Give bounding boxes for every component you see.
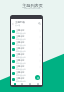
button[interactable]: Tab 2 [18, 82, 26, 85]
staticText: 主题名称 [16, 29, 25, 32]
staticText: 简要描述信息 [16, 80, 26, 82]
staticText: 主题名称 [16, 59, 25, 62]
staticText: 主题列表 [15, 21, 25, 24]
staticText: THEME LIST PAGE [24, 7, 41, 10]
staticText: 简要描述信息 [16, 62, 26, 64]
button[interactable]: 主题名称 [11, 34, 42, 40]
button[interactable]: Search [38, 22, 41, 25]
button[interactable]: 主题名称 [11, 40, 42, 46]
staticText: 主题名称 [16, 47, 25, 50]
button[interactable]: Add [35, 75, 40, 80]
staticText: 简要描述信息 [16, 44, 26, 46]
button[interactable]: Tab 4 [34, 82, 42, 85]
staticText: 主题名称 [16, 41, 25, 44]
button[interactable]: 主题名称 [11, 70, 42, 76]
button[interactable]: 主题名称 [11, 46, 42, 52]
staticText: 主题名称 [16, 77, 25, 80]
staticText: 简要描述信息 [16, 68, 26, 70]
button[interactable]: 主题名称 [11, 28, 42, 34]
button[interactable]: Back [11, 19, 42, 28]
button[interactable]: 主题名称 [11, 64, 42, 70]
staticText: 简要描述信息 [16, 56, 26, 58]
staticText: 主题名称 [16, 65, 25, 68]
staticText: 主题列表页 [22, 3, 43, 8]
staticText: 主题名称 [16, 35, 25, 38]
staticText: 主题名称 [16, 53, 25, 56]
staticText: 简要描述信息 [16, 50, 26, 52]
button[interactable]: 主题名称 [11, 52, 42, 58]
other: Back [12, 23, 14, 25]
button[interactable]: 主题名称 [11, 58, 42, 64]
staticText: 简要描述信息 [16, 32, 26, 34]
staticText: 共 9 项 [15, 24, 21, 26]
button[interactable]: 主题名称 [11, 76, 42, 82]
button[interactable]: Tab 3 [26, 82, 34, 85]
staticText: 主题名称 [16, 71, 25, 74]
staticText: 简要描述信息 [16, 74, 26, 76]
staticText: 简要描述信息 [16, 38, 26, 40]
button[interactable]: Tab 1 [11, 82, 18, 85]
